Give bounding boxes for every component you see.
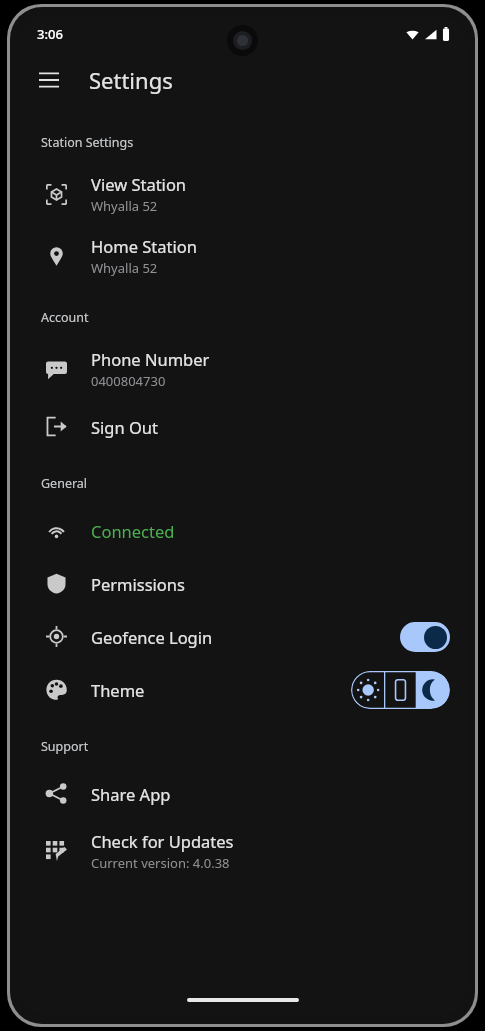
button[interactable]: Share App — [19, 767, 466, 820]
staticText: Home Station — [91, 235, 197, 257]
button[interactable]: System theme — [384, 671, 417, 709]
button[interactable]: Light theme — [351, 671, 384, 709]
staticText: Geofence Login — [91, 626, 213, 648]
staticText: Support — [41, 738, 89, 755]
button[interactable]: Phone Number — [19, 338, 466, 400]
staticText: Permissions — [91, 573, 185, 595]
staticText: Account — [41, 309, 89, 326]
staticText: 3:06 — [37, 25, 63, 43]
staticText: Station Settings — [41, 134, 134, 151]
staticText: Theme — [91, 679, 145, 701]
staticText: Share App — [91, 783, 171, 805]
button[interactable]: Permissions — [19, 557, 466, 610]
staticText: Phone Number — [91, 348, 210, 370]
staticText: Whyalla 52 — [91, 197, 158, 215]
staticText: General — [41, 475, 88, 492]
button[interactable]: View Station — [19, 163, 466, 225]
staticText: Connected — [91, 520, 175, 542]
button[interactable]: Check for Updates — [19, 820, 466, 882]
staticText: 0400804730 — [91, 372, 166, 390]
button[interactable]: Theme — [19, 663, 466, 716]
button[interactable]: Open navigation menu — [27, 58, 71, 102]
staticText: Check for Updates — [91, 830, 234, 852]
staticText: Current version: 4.0.38 — [91, 854, 230, 872]
staticText: View Station — [91, 173, 187, 195]
button[interactable]: Geofence Login — [19, 610, 466, 663]
staticText: Sign Out — [91, 416, 158, 438]
button[interactable]: Sign Out — [19, 400, 466, 453]
staticText: Whyalla 52 — [91, 259, 158, 277]
button[interactable]: Connected — [19, 504, 466, 557]
button[interactable]: Home Station — [19, 225, 466, 287]
staticText: Settings — [89, 65, 173, 95]
button[interactable]: Dark theme, selected — [417, 671, 450, 709]
button[interactable]: Geofence Login toggle, on — [400, 622, 450, 652]
